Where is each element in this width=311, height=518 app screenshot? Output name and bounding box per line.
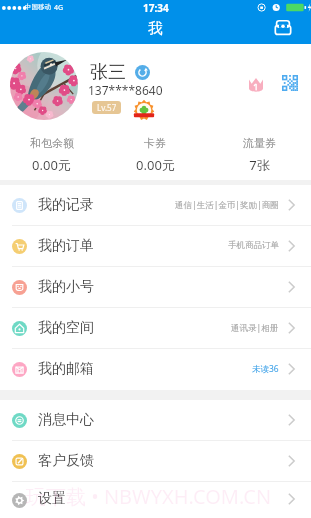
staticText: 我的记录	[38, 196, 94, 214]
staticText: 137****8640	[88, 82, 163, 98]
staticText: Lv.57	[97, 102, 117, 113]
button[interactable]: 客户反馈	[0, 441, 311, 482]
button[interactable]: 我的记录	[0, 185, 311, 226]
button[interactable]: 我的空间	[0, 308, 311, 349]
button[interactable]: 我的订单	[0, 226, 311, 267]
staticText: 我的小号	[38, 278, 94, 296]
staticText: 卡券	[144, 136, 166, 150]
staticText: 设置	[38, 490, 66, 508]
staticText: 17:34	[143, 1, 169, 15]
staticText: 未读36	[252, 363, 279, 375]
button[interactable]: Refresh	[135, 65, 150, 80]
button[interactable]: 卡券	[103, 130, 207, 180]
staticText: 我的邮箱	[38, 360, 94, 378]
button[interactable]: 消息中心	[0, 400, 311, 441]
button[interactable]: Avatar	[10, 52, 78, 120]
staticText: 我的订单	[38, 237, 94, 255]
staticText: 通讯录|相册	[231, 322, 279, 334]
staticText: 中国移动	[25, 3, 51, 11]
staticText: 和包余额	[30, 136, 74, 150]
button[interactable]: 和包余额	[0, 130, 103, 180]
button[interactable]: 我的小号	[0, 267, 311, 308]
staticText: 玩下载 • NBWYXH.COM.CN	[26, 483, 272, 510]
staticText: 我的空间	[38, 319, 94, 337]
staticText: 客户反馈	[38, 452, 94, 470]
button[interactable]: 设置	[0, 482, 311, 518]
button[interactable]: 流量券	[207, 130, 311, 180]
staticText: 7张	[249, 156, 270, 174]
staticText: 4G	[54, 3, 64, 13]
staticText: 手机商品订单	[228, 240, 279, 251]
button[interactable]: Inbox	[271, 15, 295, 39]
staticText: 通信|生活|金币|奖励|商圈	[175, 199, 279, 211]
staticText: 我	[148, 19, 163, 37]
button[interactable]: Gifts	[243, 72, 269, 98]
button[interactable]: Scan QR code	[277, 70, 302, 95]
staticText: 张三	[90, 61, 126, 84]
button[interactable]: 我的邮箱	[0, 349, 311, 390]
staticText: 0.00元	[32, 156, 71, 174]
staticText: 消息中心	[38, 411, 94, 429]
staticText: 流量券	[243, 136, 276, 150]
staticText: 0.00元	[136, 156, 175, 174]
